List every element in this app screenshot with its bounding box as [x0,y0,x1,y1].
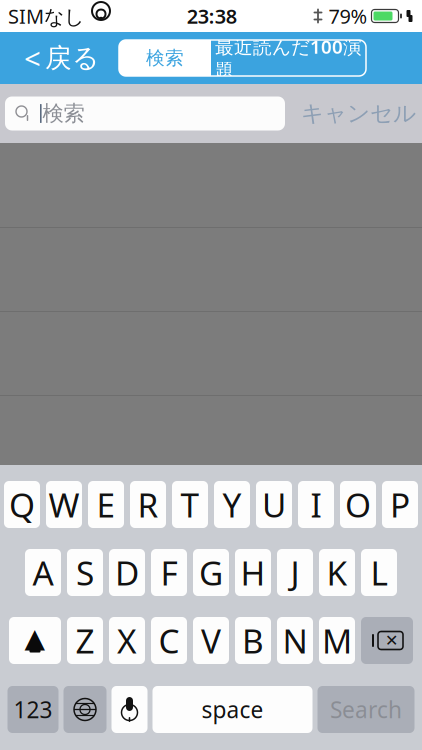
button[interactable]: R [130,481,166,528]
button[interactable]: N [277,617,313,664]
button[interactable]: K [319,549,355,596]
staticText: 検索 [146,46,184,69]
staticText: Y [222,482,241,527]
staticText: H [240,550,265,595]
staticText: U [262,482,286,527]
button[interactable]: X [109,617,145,664]
button[interactable]: Z [67,617,103,664]
staticText: キャンセル [301,100,416,127]
button[interactable]: T [172,481,208,528]
staticText: D [115,550,139,595]
button[interactable]: Shift [9,617,61,664]
button[interactable]: A [25,549,61,596]
button[interactable]: G [193,549,229,596]
button[interactable]: Dictation [111,686,147,733]
button[interactable]: 最近読んだ100演題 [211,40,366,76]
button[interactable]: Q [4,481,40,528]
button[interactable]: Delete [361,617,413,664]
staticText: SIMなし [8,3,84,29]
button[interactable]: M [319,617,355,664]
button[interactable]: < [12,32,111,84]
staticText: T [180,482,199,527]
staticText: C [158,618,179,663]
staticText: Search [330,694,402,724]
staticText: X [117,618,137,663]
button[interactable]: D [109,549,145,596]
staticText: Z [75,618,94,663]
staticText: ▲ [24,623,45,653]
staticText: 戻る [45,42,99,74]
staticText: K [326,550,347,595]
staticText: ✕ [385,631,398,650]
button[interactable]: L [361,549,397,596]
staticText: space [201,694,263,724]
button[interactable]: H [235,549,271,596]
staticText: 79% [328,3,367,29]
button[interactable]: P [382,481,418,528]
staticText: R [137,482,158,527]
button[interactable]: C [151,617,187,664]
button[interactable]: W [46,481,82,528]
button[interactable]: Search [317,686,414,733]
staticText: N [282,618,307,663]
staticText: F [160,550,177,595]
staticText: Q [9,482,35,527]
staticText: O [345,482,371,527]
staticText: L [370,550,387,595]
staticText: 23:38 [187,3,237,29]
button[interactable]: B [235,617,271,664]
staticText: 検索 [43,100,85,127]
staticText: E [96,482,115,527]
staticText: 123 [13,694,52,724]
button[interactable]: V [193,617,229,664]
button[interactable]: J [277,549,313,596]
button[interactable]: Y [214,481,250,528]
button[interactable]: キャンセル [289,91,422,135]
staticText: < [24,38,41,77]
button[interactable]: Next keyboard [63,686,106,733]
button[interactable]: O [340,481,376,528]
staticText: V [201,618,221,663]
staticText: 最近読んだ100演題 [215,34,362,82]
staticText: G [199,550,223,595]
staticText: M [322,618,352,663]
button[interactable]: 検索 [119,40,211,76]
button[interactable]: 123 [7,686,58,733]
button[interactable]: I [298,481,334,528]
staticText: W [48,482,79,527]
button[interactable]: U [256,481,292,528]
staticText: B [242,618,264,663]
staticText: S [76,550,94,595]
staticText: J [290,550,299,595]
staticText: I [310,482,321,527]
button[interactable]: S [67,549,103,596]
staticText: A [32,550,53,595]
staticText: P [390,482,410,527]
button[interactable]: space [152,686,312,733]
button[interactable]: E [88,481,124,528]
button[interactable]: F [151,549,187,596]
